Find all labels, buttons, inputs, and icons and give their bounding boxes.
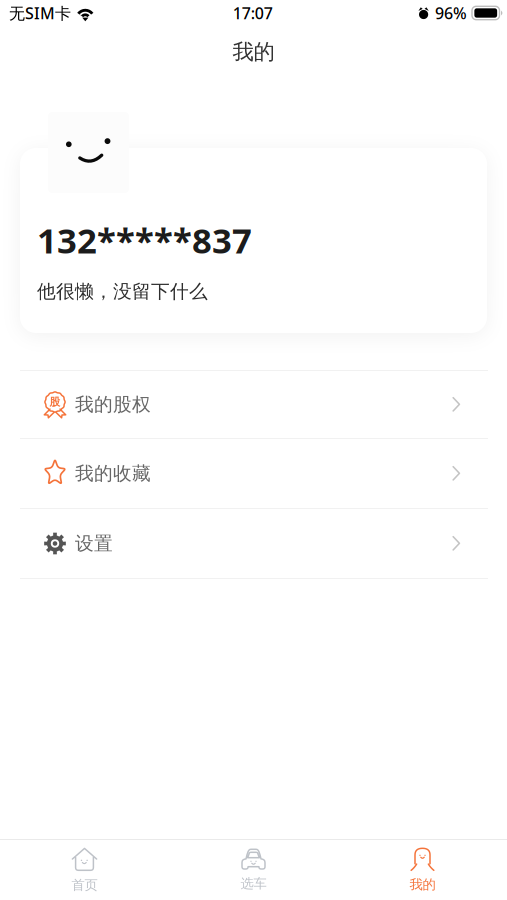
- staticText: 首页: [71, 877, 97, 893]
- button[interactable]: 我的收藏: [0, 439, 507, 508]
- staticText: 我的股权: [75, 393, 151, 416]
- staticText: 选车: [240, 875, 266, 892]
- staticText: 他很懒，没留下什么: [37, 280, 208, 303]
- button[interactable]: 选车: [169, 840, 338, 900]
- staticText: 我的: [409, 876, 435, 893]
- button[interactable]: 首页: [0, 840, 169, 900]
- staticText: 132*****837: [37, 217, 252, 263]
- staticText: 96%: [435, 2, 467, 24]
- staticText: 股: [49, 395, 60, 408]
- button[interactable]: 设置: [0, 509, 507, 578]
- staticText: 17:07: [233, 2, 273, 24]
- staticText: 无SIM卡: [9, 2, 71, 24]
- button[interactable]: 股: [0, 371, 507, 438]
- button[interactable]: 我的: [338, 840, 507, 900]
- staticText: 我的: [232, 39, 274, 65]
- staticText: 设置: [75, 532, 113, 555]
- staticText: 我的收藏: [75, 462, 151, 485]
